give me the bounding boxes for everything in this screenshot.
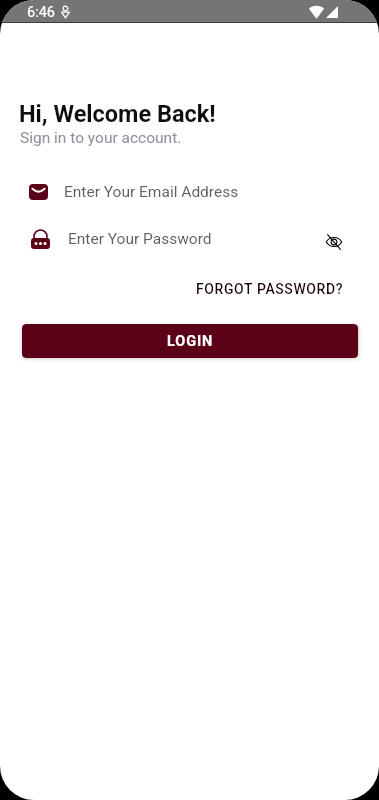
button[interactable]: Enter Your Password [0,223,320,255]
button[interactable]: FORGOT PASSWORD? [194,274,346,304]
staticText: 6:46 [27,4,55,21]
staticText: Hi, Welcome Back! [19,100,216,128]
button[interactable]: LOGIN [22,324,358,358]
staticText: Sign in to your account. [20,129,182,147]
button[interactable]: Show password [320,228,348,256]
button[interactable]: Enter Your Email Address [0,176,379,208]
staticText: Enter Your Password [68,230,212,248]
staticText: Enter Your Email Address [64,183,239,201]
staticText: LOGIN [167,333,214,350]
